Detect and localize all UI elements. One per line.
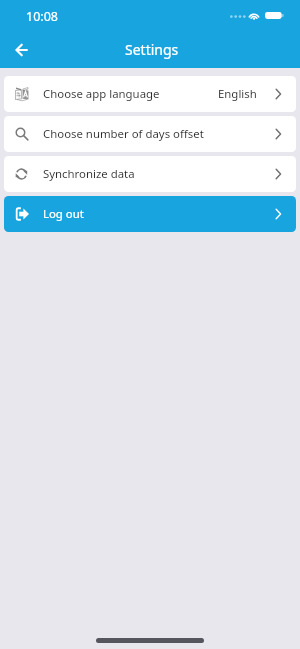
staticText: 10:08: [26, 8, 58, 25]
button[interactable]: Choose app language: [4, 76, 296, 112]
button[interactable]: Synchronize data: [4, 156, 296, 192]
staticText: Choose number of days offset: [43, 126, 204, 142]
button[interactable]: Back: [7, 35, 35, 63]
button[interactable]: Choose number of days offset: [4, 116, 296, 152]
staticText: Synchronize data: [43, 166, 135, 182]
staticText: Log out: [43, 206, 84, 222]
staticText: Choose app language: [43, 86, 160, 102]
button[interactable]: Log out: [4, 196, 296, 232]
staticText: Settings: [125, 40, 179, 59]
staticText: English: [218, 86, 257, 102]
